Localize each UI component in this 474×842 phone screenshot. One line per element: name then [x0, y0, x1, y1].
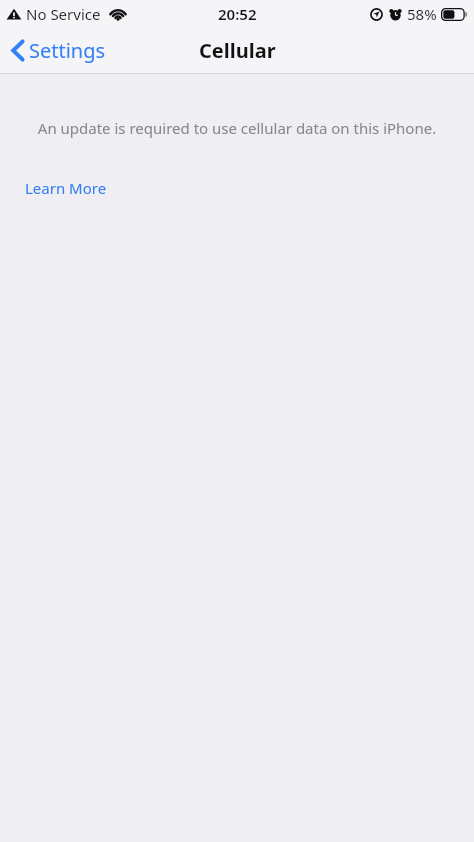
staticText: 58% [407, 4, 437, 24]
staticText: No Service [26, 4, 101, 24]
staticText: An update is required to use cellular da… [24, 118, 450, 138]
button[interactable]: Settings [0, 33, 116, 68]
other: Battery 58 percent [441, 8, 468, 21]
staticText: 20:52 [218, 4, 257, 24]
other: Wi-Fi [108, 7, 128, 22]
other: No signal warning [6, 6, 22, 22]
staticText: Learn More [25, 178, 107, 198]
other: Alarm set [389, 8, 402, 21]
button[interactable]: Learn More [17, 175, 115, 201]
staticText: Cellular [199, 37, 276, 64]
staticText: Settings [29, 37, 106, 64]
other: Location services [370, 8, 383, 21]
